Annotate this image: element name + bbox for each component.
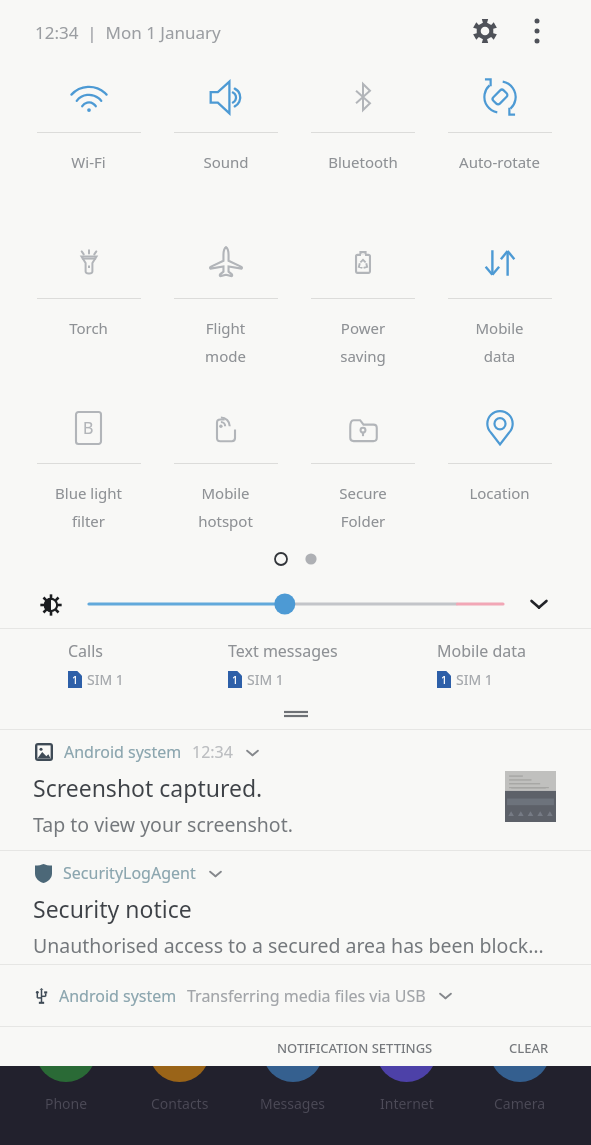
button[interactable]: Flight mode	[157, 224, 294, 389]
button[interactable]: B	[20, 389, 157, 554]
staticText: Location	[469, 483, 530, 503]
staticText: Wi-Fi	[71, 152, 106, 172]
staticText: SIM 1	[456, 670, 493, 689]
button[interactable]: Mobile hotspot	[157, 389, 294, 554]
staticText: Transferring media files via USB	[187, 985, 426, 1007]
button[interactable]: Android system	[0, 730, 591, 850]
staticText: 12:34 | Mon 1 January	[35, 21, 221, 44]
button[interactable]: More options	[515, 9, 559, 53]
staticText: Blue light filter	[55, 483, 122, 531]
button[interactable]: Messages	[237, 1066, 349, 1124]
button[interactable]: Expand quick settings	[519, 584, 559, 624]
staticText: Camera	[494, 1094, 546, 1113]
staticText: Internet	[380, 1094, 434, 1113]
staticText: Android system	[59, 985, 177, 1007]
staticText: SIM 1	[87, 670, 124, 689]
staticText: Android system	[64, 741, 182, 763]
button[interactable]: Text messages	[228, 629, 338, 700]
staticText: NOTIFICATION SETTINGS	[277, 1039, 433, 1057]
staticText: Auto-rotate	[459, 152, 540, 172]
staticText: Power saving	[340, 318, 386, 366]
button[interactable]: NOTIFICATION SETTINGS	[265, 1030, 445, 1066]
staticText: 1	[72, 672, 79, 687]
staticText: Flight mode	[205, 318, 246, 366]
staticText: SIM 1	[247, 670, 284, 689]
staticText: 1	[232, 672, 239, 687]
staticText: SecurityLogAgent	[63, 862, 196, 884]
button[interactable]: Phone	[10, 1066, 122, 1124]
staticText: Contacts	[151, 1094, 209, 1113]
button[interactable]: Camera	[464, 1066, 576, 1124]
staticText: Unauthorised access to a secured area ha…	[33, 932, 544, 959]
staticText: Torch	[69, 318, 108, 338]
staticText: B	[83, 417, 94, 439]
button[interactable]: Location	[431, 389, 568, 554]
staticText: Messages	[260, 1094, 326, 1113]
button[interactable]: Torch	[20, 224, 157, 389]
staticText: 12:34	[192, 741, 233, 763]
button[interactable]: Internet	[351, 1066, 463, 1124]
button[interactable]: Brightness	[89, 588, 503, 620]
staticText: Phone	[45, 1094, 88, 1113]
button[interactable]: Mobile data	[431, 224, 568, 389]
staticText: Mobile hotspot	[198, 483, 253, 531]
button[interactable]: Mobile data	[437, 629, 527, 700]
staticText: Calls	[68, 640, 104, 662]
button[interactable]: Settings	[463, 9, 507, 53]
staticText: Mobile data	[437, 640, 527, 662]
staticText: Text messages	[228, 640, 338, 662]
staticText: 1	[441, 672, 448, 687]
staticText: Sound	[203, 152, 249, 172]
staticText: Mobile data	[475, 318, 524, 366]
staticText: CLEAR	[509, 1039, 549, 1057]
staticText: Screenshot captured.	[33, 772, 263, 803]
button[interactable]: Sound	[157, 58, 294, 223]
button[interactable]: Wi-Fi	[20, 58, 157, 223]
button[interactable]: Android system	[0, 965, 591, 1026]
button[interactable]: Power saving	[294, 224, 431, 389]
staticText: Secure Folder	[339, 483, 387, 531]
button[interactable]: SecurityLogAgent	[0, 851, 591, 964]
button[interactable]: Bluetooth	[294, 58, 431, 223]
button[interactable]: Secure Folder	[294, 389, 431, 554]
staticText: Tap to view your screenshot.	[33, 811, 293, 838]
button[interactable]: Auto-rotate	[431, 58, 568, 223]
button[interactable]: CLEAR	[497, 1030, 561, 1066]
button[interactable]: Contacts	[124, 1066, 236, 1124]
staticText: Security notice	[33, 893, 192, 924]
button[interactable]: Calls	[68, 629, 124, 700]
staticText: Bluetooth	[328, 152, 398, 172]
